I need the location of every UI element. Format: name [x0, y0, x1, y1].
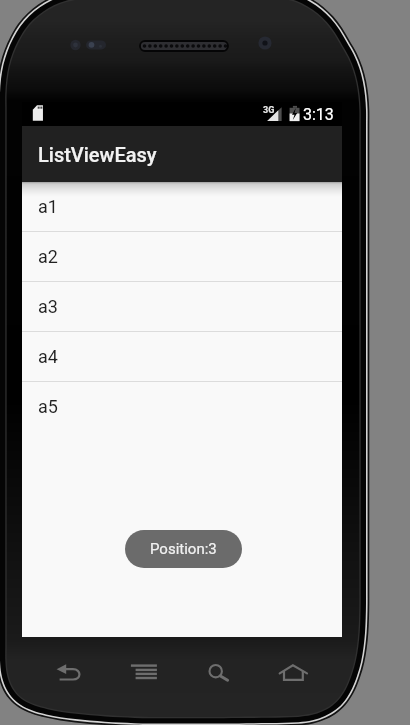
- staticText: a3: [38, 296, 58, 317]
- button[interactable]: a2: [22, 232, 342, 281]
- staticText: ListViewEasy: [38, 143, 157, 166]
- button[interactable]: Menu: [124, 656, 162, 690]
- staticText: a5: [38, 396, 58, 417]
- button[interactable]: Back: [50, 656, 88, 690]
- staticText: a1: [38, 196, 58, 217]
- staticText: 3G: [263, 105, 275, 116]
- staticText: Position:3: [150, 540, 217, 558]
- staticText: a4: [38, 346, 58, 367]
- button[interactable]: a4: [22, 332, 342, 381]
- staticText: 3:13: [303, 105, 334, 124]
- button[interactable]: Search: [198, 656, 236, 690]
- button[interactable]: a1: [22, 182, 342, 231]
- button[interactable]: Home: [272, 656, 310, 690]
- button[interactable]: a3: [22, 282, 342, 331]
- staticText: a2: [38, 246, 58, 267]
- button[interactable]: a5: [22, 382, 342, 431]
